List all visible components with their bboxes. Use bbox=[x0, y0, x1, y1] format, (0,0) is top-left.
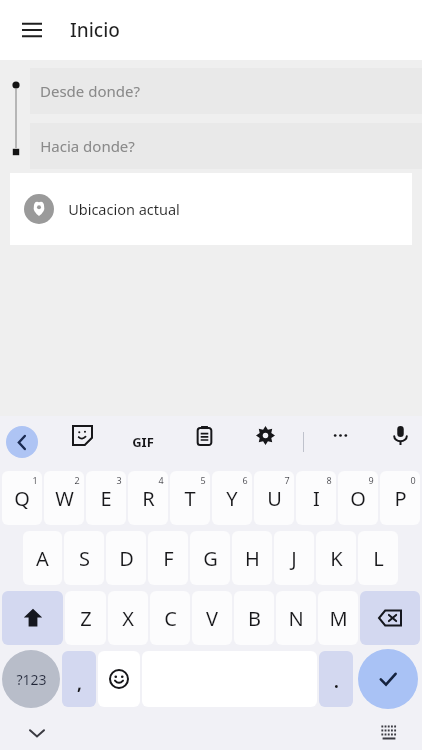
button[interactable]: B bbox=[234, 591, 274, 645]
staticText: . bbox=[334, 670, 339, 693]
staticText: U bbox=[267, 485, 282, 512]
button[interactable]: C bbox=[150, 591, 190, 645]
button[interactable]: Z bbox=[65, 591, 106, 645]
staticText: A bbox=[36, 545, 49, 572]
button[interactable]: Keyboard settings bbox=[246, 416, 284, 454]
staticText: Z bbox=[80, 605, 92, 632]
button[interactable]: N bbox=[276, 591, 316, 645]
staticText: Ubicacion actual bbox=[68, 199, 180, 219]
staticText: 5 bbox=[200, 474, 206, 486]
staticText: G bbox=[203, 545, 218, 572]
staticText: 9 bbox=[368, 474, 374, 486]
button[interactable]: T bbox=[170, 471, 210, 525]
button[interactable]: , bbox=[62, 651, 96, 707]
staticText: D bbox=[119, 545, 134, 572]
staticText: J bbox=[291, 545, 297, 572]
staticText: E bbox=[100, 485, 112, 512]
button[interactable]: . bbox=[319, 651, 353, 707]
staticText: , bbox=[77, 672, 82, 695]
staticText: L bbox=[373, 545, 384, 572]
button[interactable]: I bbox=[296, 471, 336, 525]
staticText: Y bbox=[226, 485, 238, 512]
staticText: O bbox=[350, 485, 366, 512]
button[interactable]: P bbox=[380, 471, 420, 525]
staticText: M bbox=[329, 605, 348, 632]
staticText: 0 bbox=[410, 474, 416, 486]
button[interactable]: U bbox=[254, 471, 294, 525]
button[interactable]: Stickers bbox=[63, 416, 101, 454]
button[interactable]: F bbox=[148, 531, 188, 585]
button[interactable]: K bbox=[316, 531, 356, 585]
staticText: T bbox=[184, 485, 196, 512]
staticText: C bbox=[164, 605, 177, 632]
button[interactable]: Clipboard bbox=[185, 416, 223, 454]
staticText: GIF bbox=[132, 433, 154, 451]
button[interactable]: J bbox=[274, 531, 314, 585]
button[interactable]: ?123 bbox=[2, 650, 60, 708]
button[interactable]: Shift bbox=[2, 591, 63, 645]
button[interactable]: S bbox=[64, 531, 104, 585]
staticText: 7 bbox=[284, 474, 290, 486]
button[interactable]: R bbox=[128, 471, 168, 525]
button[interactable]: Open navigation menu bbox=[8, 6, 56, 54]
button[interactable]: Q bbox=[2, 471, 42, 525]
staticText: R bbox=[142, 485, 155, 512]
button[interactable]: O bbox=[338, 471, 378, 525]
staticText: ?123 bbox=[16, 670, 47, 689]
staticText: P bbox=[394, 485, 407, 512]
button[interactable]: Hide keyboard bbox=[22, 718, 52, 748]
staticText: 6 bbox=[242, 474, 248, 486]
staticText: F bbox=[163, 545, 174, 572]
button[interactable]: Back bbox=[6, 426, 38, 458]
button[interactable]: Ubicacion actual bbox=[10, 173, 412, 245]
button[interactable]: H bbox=[232, 531, 272, 585]
button[interactable]: Desde donde? bbox=[30, 68, 422, 114]
staticText: Hacia donde? bbox=[40, 136, 135, 156]
button[interactable]: V bbox=[192, 591, 232, 645]
button[interactable]: Change keyboard bbox=[374, 718, 404, 748]
staticText: B bbox=[248, 605, 261, 632]
staticText: H bbox=[245, 545, 260, 572]
button[interactable]: M bbox=[318, 591, 358, 645]
staticText: 8 bbox=[326, 474, 332, 486]
button[interactable]: Enter bbox=[358, 649, 418, 709]
staticText: S bbox=[79, 545, 90, 572]
button[interactable]: G bbox=[190, 531, 230, 585]
button[interactable]: E bbox=[86, 471, 126, 525]
staticText: 1 bbox=[32, 474, 38, 486]
staticText: 2 bbox=[74, 474, 80, 486]
staticText: Q bbox=[14, 485, 30, 512]
button[interactable]: Voice input bbox=[381, 416, 419, 454]
staticText: Inicio bbox=[70, 17, 120, 43]
button[interactable]: Hacia donde? bbox=[30, 123, 422, 169]
button[interactable]: Backspace bbox=[360, 591, 420, 645]
staticText: N bbox=[288, 605, 304, 632]
button[interactable]: L bbox=[358, 531, 398, 585]
button[interactable]: D bbox=[106, 531, 146, 585]
button[interactable]: X bbox=[108, 591, 148, 645]
staticText: K bbox=[330, 545, 343, 572]
button[interactable]: A bbox=[23, 531, 62, 585]
staticText: 3 bbox=[116, 474, 122, 486]
button[interactable]: More options bbox=[321, 416, 359, 454]
button[interactable]: GIF bbox=[124, 423, 162, 461]
staticText: W bbox=[55, 485, 74, 512]
button[interactable]: Emoji bbox=[98, 651, 140, 707]
staticText: Desde donde? bbox=[40, 81, 140, 101]
staticText: X bbox=[122, 605, 134, 632]
staticText: 4 bbox=[158, 474, 164, 486]
button[interactable]: W bbox=[44, 471, 84, 525]
button[interactable]: Y bbox=[212, 471, 252, 525]
staticText: V bbox=[206, 605, 218, 632]
staticText: I bbox=[313, 485, 320, 512]
